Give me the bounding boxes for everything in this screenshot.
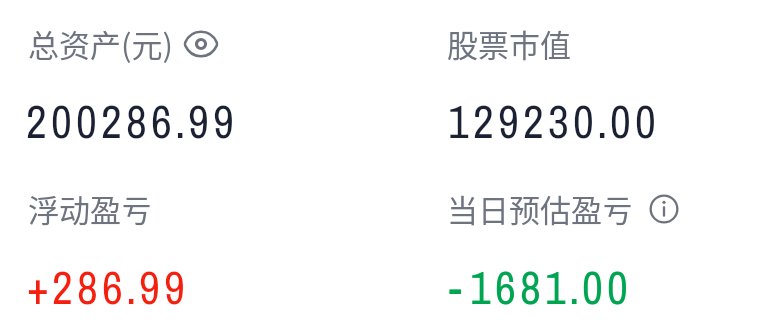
staticText: 9 <box>188 91 209 152</box>
staticText: 6 <box>151 91 172 152</box>
staticText: 1 <box>470 257 491 318</box>
staticText: 0 <box>610 91 631 152</box>
staticText: 6 <box>495 257 516 318</box>
staticText: 8 <box>77 257 98 318</box>
staticText: 浮动盈亏 <box>28 186 152 231</box>
staticText: 2 <box>101 91 122 152</box>
staticText: 2 <box>52 257 73 318</box>
staticText: + <box>27 257 49 318</box>
staticText: 2 <box>26 91 47 152</box>
staticText: . <box>126 257 137 318</box>
staticText: 0 <box>582 257 603 318</box>
staticText: - <box>449 257 462 318</box>
staticText: 9 <box>164 257 185 318</box>
staticText: 0 <box>607 257 628 318</box>
staticText: 9 <box>213 91 234 152</box>
staticText: 0 <box>76 91 97 152</box>
staticText: 1 <box>545 257 566 318</box>
staticText: 2 <box>523 91 544 152</box>
staticText: 9 <box>139 257 160 318</box>
staticText: . <box>597 91 608 152</box>
staticText: 9 <box>498 91 519 152</box>
button[interactable]: Toggle balance visibility <box>184 31 218 57</box>
staticText: 0 <box>635 91 656 152</box>
staticText: 0 <box>51 91 72 152</box>
staticText: . <box>175 91 186 152</box>
staticText: 8 <box>520 257 541 318</box>
staticText: 股票市值 <box>447 21 571 66</box>
staticText: . <box>569 257 580 318</box>
staticText: 3 <box>548 91 569 152</box>
staticText: 当日预估盈亏 <box>447 186 633 231</box>
staticText: 6 <box>102 257 123 318</box>
staticText: 0 <box>573 91 594 152</box>
staticText: 1 <box>448 91 469 152</box>
staticText: 2 <box>473 91 494 152</box>
staticText: 8 <box>126 91 147 152</box>
button[interactable]: Estimated profit and loss info <box>649 194 679 224</box>
staticText: 总资产(元) <box>28 21 173 66</box>
